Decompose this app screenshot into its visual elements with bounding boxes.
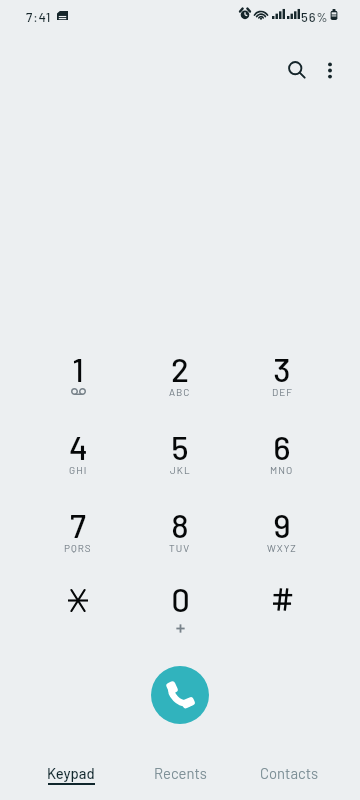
staticText: ABC [169,386,191,398]
staticText: 4 [69,427,88,467]
staticText: GHI [69,464,88,476]
staticText: 7:41 [26,9,52,25]
staticText: 0 [171,579,190,619]
staticText: TUV [169,542,191,554]
staticText: 9 [273,505,291,545]
staticText: DEF [272,386,293,398]
button[interactable]: Search [277,50,317,90]
button[interactable]: Call [151,666,209,724]
button[interactable]: Recents [126,764,235,800]
staticText: Contacts [260,764,319,782]
button[interactable]: 0 [129,579,231,657]
staticText: 2 [171,349,189,389]
staticText: 3 [273,349,291,389]
staticText: 5 [171,427,189,467]
button[interactable]: 3 [231,349,333,427]
button[interactable]: 1 [27,349,129,427]
button[interactable]: Contacts [235,764,344,800]
staticText: 7 [70,505,86,545]
staticText: 1 [72,349,84,389]
button[interactable]: 8 [129,505,231,579]
button[interactable] [27,579,129,657]
staticText: 6 [273,427,291,467]
staticText: MNO [270,464,294,476]
button[interactable]: 4 [27,427,129,505]
staticText: 8 [171,505,189,545]
button[interactable]: 2 [129,349,231,427]
staticText: 56% [301,9,329,25]
button[interactable]: 9 [231,505,333,579]
button[interactable]: More options [310,50,350,90]
staticText: WXYZ [267,542,297,554]
staticText: Recents [154,764,207,782]
staticText: Keypad [47,764,95,782]
button[interactable]: Keypad [16,764,126,800]
button[interactable]: 5 [129,427,231,505]
button[interactable]: 6 [231,427,333,505]
button[interactable]: 7 [27,505,129,579]
staticText: JKL [170,464,191,476]
button[interactable] [231,579,333,657]
staticText: PQRS [64,542,92,554]
